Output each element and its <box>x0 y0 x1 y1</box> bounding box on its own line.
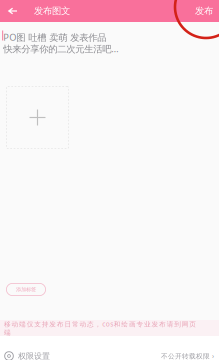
staticText: 不公开转载权限 › <box>161 352 214 360</box>
staticText: 发布图文 <box>34 5 70 17</box>
staticText: 添加标签 <box>16 286 36 293</box>
button[interactable]: Add photo <box>6 86 69 149</box>
staticText: PO图 吐槽 卖萌 发表作品 <box>3 31 106 43</box>
button[interactable]: 不公开转载权限 › <box>161 349 219 360</box>
staticText: 快来分享你的二次元生活吧… <box>3 42 118 55</box>
staticText: 移动端仅支持发布日常动态，cos和绘画专业发布请到网页端 <box>4 319 196 336</box>
button[interactable]: Back <box>0 0 26 22</box>
staticText: 权限设置 <box>18 351 50 360</box>
button[interactable]: 添加标签 <box>6 283 46 296</box>
button[interactable]: 权限设置 <box>0 349 50 360</box>
button[interactable]: 发布 <box>189 0 219 22</box>
staticText: 发布 <box>195 5 213 17</box>
